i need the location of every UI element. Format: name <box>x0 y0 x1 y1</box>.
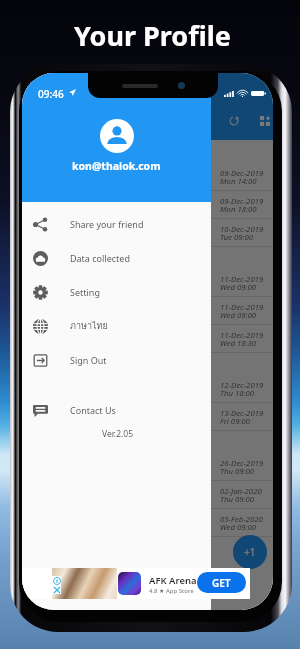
staticText: 11-Dec-2019 <box>220 330 264 341</box>
button[interactable]: 09-Dec-2019 <box>22 163 273 191</box>
staticText: 4.8 ★ App Store <box>149 587 194 595</box>
staticText: Mon 14:00 <box>220 176 257 187</box>
button[interactable]: 11-Dec-2019 <box>22 325 273 353</box>
staticText: Data collected <box>70 252 130 264</box>
staticText: Ver.2.05 <box>102 428 134 440</box>
staticText: Sign Out <box>70 354 107 366</box>
button[interactable]: 05-Feb-2020 <box>22 509 273 537</box>
staticText: Wed 09:00 <box>220 282 257 293</box>
button[interactable]: 09-Dec-2019 <box>22 191 273 219</box>
staticText: Wed 09:00 <box>220 310 257 321</box>
button[interactable]: ภาษาไทย <box>22 309 211 343</box>
staticText: 09-Dec-2019 <box>220 168 264 179</box>
staticText: kon@thaiok.com <box>72 159 161 173</box>
staticText: 12-Dec-2019 <box>220 380 264 391</box>
staticText: Fri 09:00 <box>220 416 251 427</box>
button[interactable]: Sign Out <box>22 343 211 377</box>
staticText: Setting <box>70 286 100 298</box>
button[interactable]: +1 <box>233 535 267 569</box>
staticText: Mon 18:00 <box>220 204 257 215</box>
staticText: AFK Arena <box>149 574 197 587</box>
button[interactable]: 26-Dec-2019 <box>22 453 273 481</box>
staticText: Wed 09:00 <box>220 522 257 533</box>
button[interactable]: 02-Jan-2020 <box>22 481 273 509</box>
button[interactable]: GET <box>197 572 246 593</box>
button[interactable]: 12-Dec-2019 <box>22 375 273 403</box>
staticText: 26-Dec-2019 <box>220 458 264 469</box>
staticText: ภาษาไทย <box>70 319 108 333</box>
staticText: Contact Us <box>70 404 116 416</box>
staticText: Thu 09:00 <box>220 494 255 505</box>
staticText: 05-Feb-2020 <box>220 514 263 525</box>
button[interactable]: Share your friend <box>22 207 211 241</box>
staticText: Share your friend <box>70 218 144 230</box>
button[interactable]: AFK Arena <box>22 568 250 599</box>
staticText: Your Profile <box>74 17 231 54</box>
staticText: Thu 09:00 <box>220 466 255 477</box>
staticText: 09:46 <box>38 87 64 101</box>
staticText: 11-Dec-2019 <box>220 274 264 285</box>
staticText: 13-Dec-2019 <box>220 408 264 419</box>
button[interactable]: Setting <box>22 275 211 309</box>
button[interactable]: 10-Dec-2019 <box>22 219 273 247</box>
staticText: +1 <box>244 545 256 559</box>
staticText: 09-Dec-2019 <box>220 196 264 207</box>
staticText: Thu 18:00 <box>220 388 255 399</box>
button[interactable]: Refresh <box>220 107 247 134</box>
button[interactable]: Data collected <box>22 241 211 275</box>
staticText: GET <box>212 576 231 590</box>
button[interactable]: 11-Dec-2019 <box>22 269 273 297</box>
button[interactable]: 13-Dec-2019 <box>22 403 273 431</box>
staticText: 02-Jan-2020 <box>220 486 262 497</box>
staticText: 10-Dec-2019 <box>220 224 264 235</box>
staticText: Wed 18:30 <box>220 338 257 349</box>
button[interactable]: Dashboard <box>251 107 273 134</box>
button[interactable]: 11-Dec-2019 <box>22 297 273 325</box>
staticText: 11-Dec-2019 <box>220 302 264 313</box>
button[interactable]: Contact Us <box>22 393 211 427</box>
staticText: Tue 09:00 <box>220 232 254 243</box>
